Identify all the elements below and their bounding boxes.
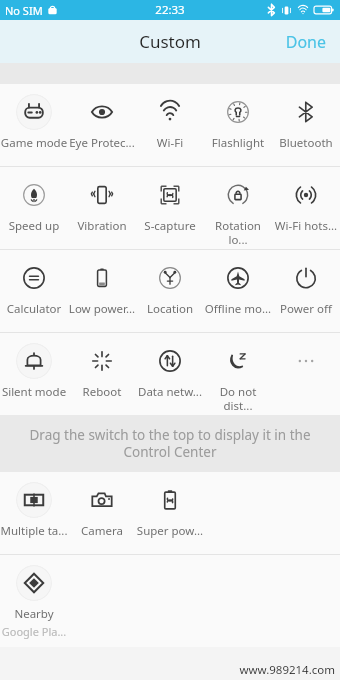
staticText: S-capture: [136, 218, 204, 234]
staticText: Done: [285, 31, 326, 53]
staticText: Data netw...: [136, 384, 204, 400]
button[interactable]: Camera: [68, 472, 136, 554]
staticText: Drag the switch to the top to display it…: [20, 426, 320, 461]
button[interactable]: Vibration: [68, 167, 136, 249]
staticText: Low power...: [68, 301, 136, 317]
button[interactable]: Do not dist...: [204, 333, 272, 415]
staticText: Bluetooth: [272, 135, 340, 151]
staticText: Wi-Fi: [136, 135, 204, 151]
staticText: Custom: [139, 30, 201, 53]
staticText: Super pow...: [136, 523, 204, 539]
button[interactable]: Reboot: [68, 333, 136, 415]
button[interactable]: Silent mode: [0, 333, 68, 415]
staticText: Eye Protec...: [68, 135, 136, 151]
staticText: Offline mo...: [204, 301, 272, 317]
staticText: Flashlight: [204, 135, 272, 151]
staticText: Reboot: [68, 384, 136, 400]
staticText: No SIM: [5, 3, 43, 18]
button[interactable]: Nearby: [0, 555, 68, 647]
staticText: Speed up: [0, 218, 68, 234]
button[interactable]: Super pow...: [136, 472, 204, 554]
staticText: Vibration: [68, 218, 136, 234]
staticText: Nearby: [0, 606, 68, 622]
button[interactable]: S-capture: [136, 167, 204, 249]
button[interactable]: Low power...: [68, 250, 136, 332]
staticText: Power off: [272, 301, 340, 317]
button[interactable]: Game mode: [0, 84, 68, 166]
button[interactable]: Wi-Fi hots...: [272, 167, 340, 249]
staticText: 22:33: [155, 2, 185, 18]
button[interactable]: Multiple ta...: [0, 472, 68, 554]
button[interactable]: Eye Protec...: [68, 84, 136, 166]
staticText: Game mode: [0, 135, 68, 151]
button[interactable]: Power off: [272, 250, 340, 332]
button[interactable]: Rotation lo...: [204, 167, 272, 249]
button[interactable]: Wi-Fi: [136, 84, 204, 166]
button[interactable]: Flashlight: [204, 84, 272, 166]
staticText: Calculator: [0, 301, 68, 317]
staticText: Multiple ta...: [0, 523, 68, 539]
button[interactable]: Location: [136, 250, 204, 332]
button[interactable]: Bluetooth: [272, 84, 340, 166]
staticText: Rotation lo...: [204, 218, 272, 248]
staticText: www.989214.com: [239, 662, 335, 678]
staticText: Do not dist...: [204, 384, 272, 414]
button[interactable]: Calculator: [0, 250, 68, 332]
staticText: Google Pla...: [0, 624, 68, 639]
button[interactable]: More: [272, 333, 340, 415]
button[interactable]: Offline mo...: [204, 250, 272, 332]
staticText: Camera: [68, 523, 136, 539]
staticText: Wi-Fi hots...: [272, 218, 340, 234]
button[interactable]: Done: [271, 22, 340, 62]
button[interactable]: Data netw...: [136, 333, 204, 415]
staticText: Location: [136, 301, 204, 317]
button[interactable]: Speed up: [0, 167, 68, 249]
staticText: Silent mode: [0, 384, 68, 400]
